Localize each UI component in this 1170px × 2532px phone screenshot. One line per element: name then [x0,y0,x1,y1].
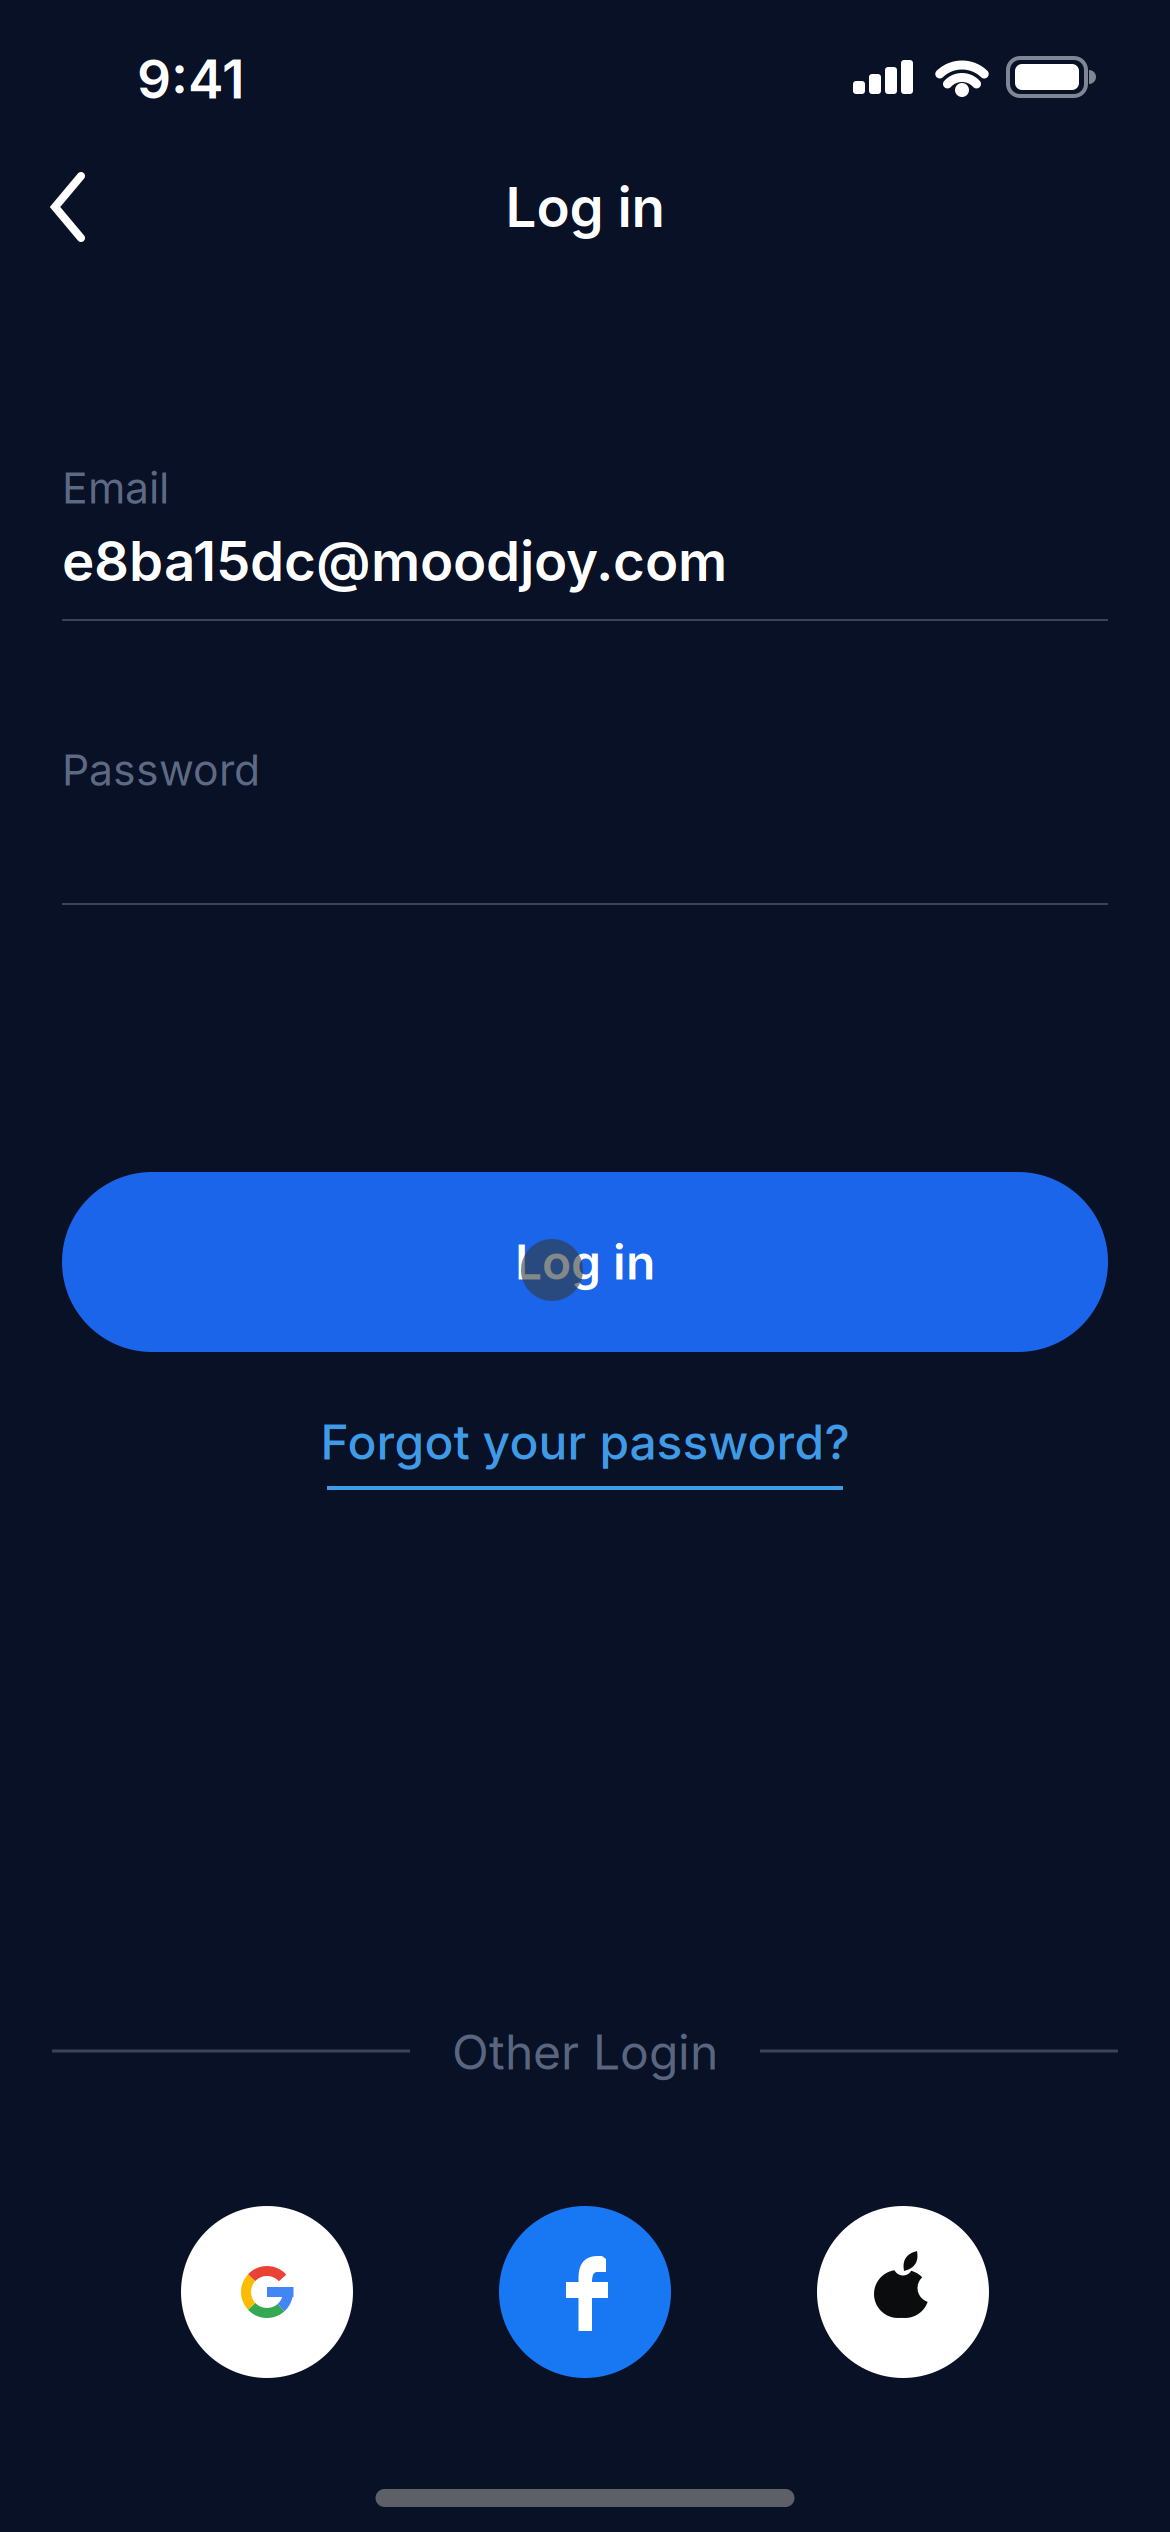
staticText: e8ba15dc@moodjoy.com [62,529,727,593]
button[interactable] [181,2206,353,2378]
staticText: 9:41 [137,47,245,110]
staticText: Log in [515,1234,655,1290]
button[interactable] [817,2206,989,2378]
staticText: Log in [505,175,664,239]
button[interactable]: Forgot your password? [320,1414,849,1470]
button[interactable]: Log in [62,1172,1108,1352]
button[interactable]: Email [62,457,1108,621]
button[interactable] [50,172,88,242]
button[interactable] [499,2206,671,2378]
staticText: Email [62,463,169,513]
staticText: Forgot your password? [320,1414,849,1470]
staticText: Other Login [452,2024,718,2080]
staticText: Password [62,745,260,795]
button[interactable]: Password [62,745,1108,905]
